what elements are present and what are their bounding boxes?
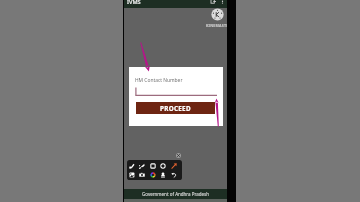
button[interactable]: Undo bbox=[171, 172, 177, 178]
staticText: IVMS bbox=[127, 0, 141, 6]
button[interactable]: Logout bbox=[211, 0, 216, 4]
button[interactable]: Brush bbox=[129, 163, 135, 169]
button[interactable]: Arrow bbox=[171, 163, 177, 169]
button[interactable]: PROCEED bbox=[136, 102, 215, 114]
staticText: HM Contact Number bbox=[135, 77, 183, 84]
button[interactable]: Eraser bbox=[160, 172, 166, 178]
button[interactable]: More options bbox=[220, 0, 225, 4]
button[interactable]: Close toolbar bbox=[176, 153, 181, 158]
button[interactable]: IVMS bbox=[124, 0, 227, 8]
button[interactable]: Save bbox=[129, 172, 135, 178]
button[interactable]: Circle bbox=[160, 163, 166, 169]
button[interactable]: Screenshot bbox=[139, 172, 145, 178]
staticText: KINEMASTER bbox=[206, 23, 227, 28]
button[interactable]: Colour bbox=[150, 172, 156, 178]
staticText: Government of Andhra Pradesh bbox=[142, 191, 210, 197]
button[interactable]: Government of Andhra Pradesh bbox=[124, 189, 227, 199]
button[interactable]: Rectangle bbox=[150, 163, 156, 169]
staticText: PROCEED bbox=[160, 104, 191, 113]
button[interactable]: Highlighter bbox=[139, 163, 145, 169]
